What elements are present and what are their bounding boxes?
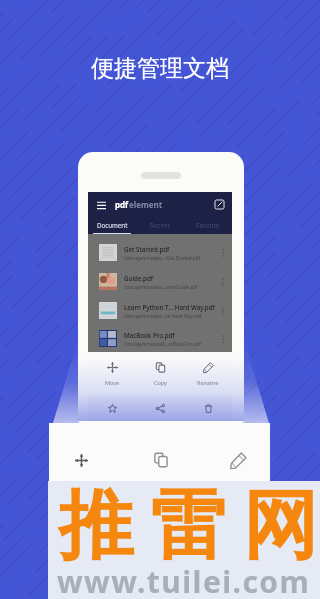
staticText: 推雷网 xyxy=(50,479,320,573)
other: Delete xyxy=(204,404,213,413)
button[interactable]: Rename xyxy=(184,352,232,396)
staticText: Move xyxy=(105,379,120,386)
other: Menu xyxy=(97,200,106,209)
other: Copy xyxy=(153,452,169,468)
button[interactable]: Rename xyxy=(226,448,250,472)
staticText: Guide.pdf xyxy=(124,274,154,282)
button[interactable]: Copy xyxy=(136,352,184,396)
button[interactable]: Move xyxy=(88,352,136,396)
other: Edit xyxy=(215,200,224,209)
button[interactable]: Get Started.pdf xyxy=(99,238,227,267)
button[interactable]: Move xyxy=(69,448,93,472)
staticText: /storage/emulate...ores/Guide.pdf xyxy=(124,284,198,290)
button[interactable]: Recent xyxy=(136,216,184,234)
button[interactable]: Learn Python T... Hard Way.pdf xyxy=(99,296,227,325)
staticText: /storage/emulate...he Hard Way.pdf xyxy=(124,313,202,319)
staticText: MacBook Pro.pdf xyxy=(124,331,175,339)
staticText: Guide.pdf xyxy=(124,274,154,282)
staticText: pdf xyxy=(115,199,129,210)
staticText: www.tuilei.com xyxy=(57,561,311,599)
staticText: 便捷管理文档 xyxy=(91,54,229,83)
staticText: Copy xyxy=(154,379,167,386)
staticText: Learn Python T... Hard Way.pdf xyxy=(124,303,215,311)
staticText: Get Started.pdf xyxy=(124,245,170,253)
other: Share xyxy=(156,404,165,413)
staticText: /storage/emulate.../Get Started.pdf xyxy=(124,255,200,261)
button[interactable]: Document xyxy=(88,216,136,234)
button[interactable]: MacBook Pro.pdf xyxy=(99,325,227,352)
other: Favorite xyxy=(108,404,117,413)
button[interactable]: Favorite xyxy=(184,216,232,234)
button[interactable]: Delete xyxy=(184,396,232,420)
staticText: element xyxy=(129,199,163,210)
button[interactable]: Copy xyxy=(149,448,173,472)
button[interactable]: Share xyxy=(136,396,184,420)
staticText: /storage/emulated...acBook Pro.pdf xyxy=(124,341,201,347)
staticText: Document xyxy=(97,221,128,229)
staticText: MacBook Pro.pdf xyxy=(124,331,175,339)
staticText: Rename xyxy=(197,379,219,386)
staticText: Learn Python T... Hard Way.pdf xyxy=(124,303,215,311)
other: Rename xyxy=(230,452,247,469)
button[interactable]: Favorite xyxy=(88,396,136,420)
staticText: Favorite xyxy=(196,221,220,229)
button[interactable]: Guide.pdf xyxy=(99,267,227,296)
button[interactable]: Menu xyxy=(95,198,107,210)
staticText: Recent xyxy=(150,221,170,229)
staticText: /storage/emulate...ores/Guide.pdf xyxy=(124,284,198,290)
button[interactable]: Edit xyxy=(213,198,225,210)
staticText: Get Started.pdf xyxy=(124,245,170,253)
staticText: /storage/emulate.../Get Started.pdf xyxy=(124,255,200,261)
other: Move xyxy=(75,454,88,467)
staticText: /storage/emulated...acBook Pro.pdf xyxy=(124,341,201,347)
staticText: /storage/emulate...he Hard Way.pdf xyxy=(124,313,202,319)
